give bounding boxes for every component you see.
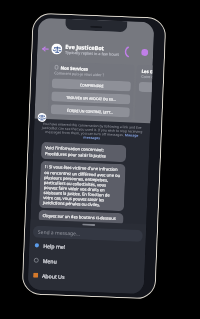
staticText: Send a message... [38, 229, 81, 237]
button[interactable]: Send a message... [33, 226, 143, 242]
staticText: Cliquez sur un des boutons ci-dessous [42, 213, 117, 222]
button[interactable]: Call [123, 44, 138, 59]
staticText: Les Gar [141, 68, 152, 74]
staticText: You have entered this conversation by fo… [40, 121, 144, 142]
staticText: Voici l'information concernant: Procédur… [45, 145, 106, 158]
button[interactable]: TROUVER UN AVOCAT OU EX... [51, 91, 130, 104]
button[interactable]: Help me! [29, 237, 146, 257]
staticText: ÉCRIRE UN CONTRAT, LETT... [67, 108, 114, 115]
staticText: Comment puis-je vous aider ? [54, 70, 104, 77]
button[interactable]: ÉCRIRE UN CONTRAT, LETT... [51, 104, 130, 117]
button[interactable]: COMPRENDRE [52, 78, 131, 91]
staticText: COMPRENDRE [80, 82, 104, 88]
staticText: Nos Services [60, 65, 89, 72]
staticText: Eve JusticeBot [65, 43, 104, 51]
button[interactable] [139, 82, 152, 92]
button[interactable]: Info [137, 45, 151, 59]
staticText: Cotre qu [141, 74, 152, 79]
button[interactable]: Menu [28, 252, 145, 272]
staticText: Help me! [43, 242, 65, 250]
staticText: 1: Si vous êtes victime d'une infraction… [43, 164, 122, 208]
staticText: About Us [42, 272, 65, 280]
staticText: Menu [43, 257, 58, 265]
staticText: TROUVER UN AVOCAT OU EX... [66, 95, 116, 102]
button[interactable]: Back [39, 43, 50, 54]
button[interactable]: About Us [28, 267, 144, 287]
staticText: Typically replies in a few hours [65, 50, 120, 57]
